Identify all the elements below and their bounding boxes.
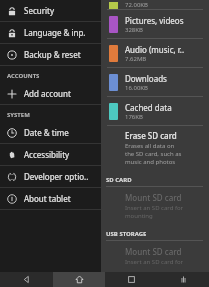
staticText: Erases all data on the SD card, such as … [125,142,182,166]
button[interactable]: Date & time [0,122,101,143]
staticText: Insert an SD card for mounting [125,258,184,267]
staticText: Insert an SD card for mounting [125,204,184,220]
staticText: Mount SD card [125,246,182,257]
staticText: Mount SD card [125,192,182,203]
button[interactable]: Pictures, videos [101,10,209,38]
button[interactable]: Audio (music, r.. [101,39,209,67]
staticText: Pictures, videos [125,15,184,26]
staticText: Accessibility [24,149,70,160]
staticText: Downloads [125,73,167,84]
staticText: Language & inp. [24,27,86,38]
staticText: Security [24,5,55,16]
button[interactable]: Menu [157,272,209,287]
button[interactable]: Downloads [101,68,209,96]
staticText: Cached data [125,102,172,113]
staticText: USB STORAGE [106,230,147,238]
staticText: Date & time [24,127,69,138]
staticText: 7.62MB [125,55,147,63]
staticText: 176KB [125,113,143,121]
button[interactable]: Mount SD card [101,241,209,272]
button[interactable]: Security [0,0,101,21]
button[interactable]: Add account [0,83,101,104]
button[interactable]: Home [53,272,105,287]
staticText: Erase SD card [125,130,177,141]
staticText: SYSTEM [7,111,30,119]
staticText: ACCOUNTS [7,72,40,80]
staticText: Backup & reset [24,49,81,60]
button[interactable]: Cached data [101,97,209,125]
staticText: Audio (music, r.. [125,44,185,55]
staticText: Developer optio.. [24,171,89,182]
button[interactable]: Mount SD card [101,187,209,225]
staticText: SD CARD [106,176,132,184]
button[interactable]: Developer optio.. [0,166,101,187]
staticText: Add account [24,88,71,99]
button[interactable]: Back [0,272,53,287]
staticText: 72.00KB [125,1,148,9]
button[interactable]: Accessibility [0,144,101,165]
button[interactable]: About tablet [0,188,101,209]
staticText: 16.00KB [125,84,148,92]
staticText: About tablet [24,193,71,204]
button[interactable]: Backup & reset [0,44,101,65]
staticText: 328KB [125,26,143,34]
button[interactable]: Erase SD card [101,126,209,171]
button[interactable]: Language & inp. [0,22,101,43]
button[interactable]: Recents [105,272,157,287]
